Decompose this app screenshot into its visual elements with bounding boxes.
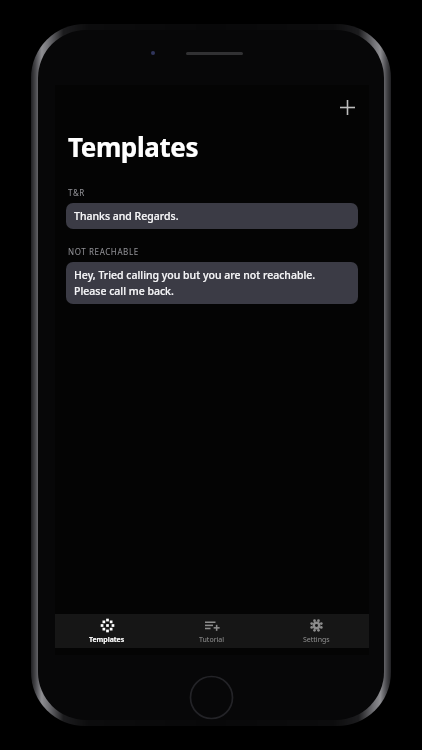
button[interactable]: Templates: [55, 614, 159, 648]
staticText: Hey, Tried calling you but you are not r…: [74, 268, 316, 282]
button[interactable]: Add template: [332, 92, 362, 122]
staticText: Tutorial: [199, 635, 225, 645]
staticText: Please call me back.: [74, 284, 174, 298]
button[interactable]: Settings: [264, 614, 369, 648]
button[interactable]: Hey, Tried calling you but you are not r…: [66, 262, 358, 304]
staticText: T&R: [68, 187, 85, 198]
staticText: Settings: [303, 635, 330, 645]
staticText: Templates: [68, 129, 199, 164]
staticText: Thanks and Regards.: [74, 209, 179, 223]
button[interactable]: Thanks and Regards.: [66, 203, 358, 229]
staticText: NOT REACHABLE: [68, 246, 139, 257]
button[interactable]: Tutorial: [159, 614, 264, 648]
staticText: Templates: [89, 635, 125, 645]
